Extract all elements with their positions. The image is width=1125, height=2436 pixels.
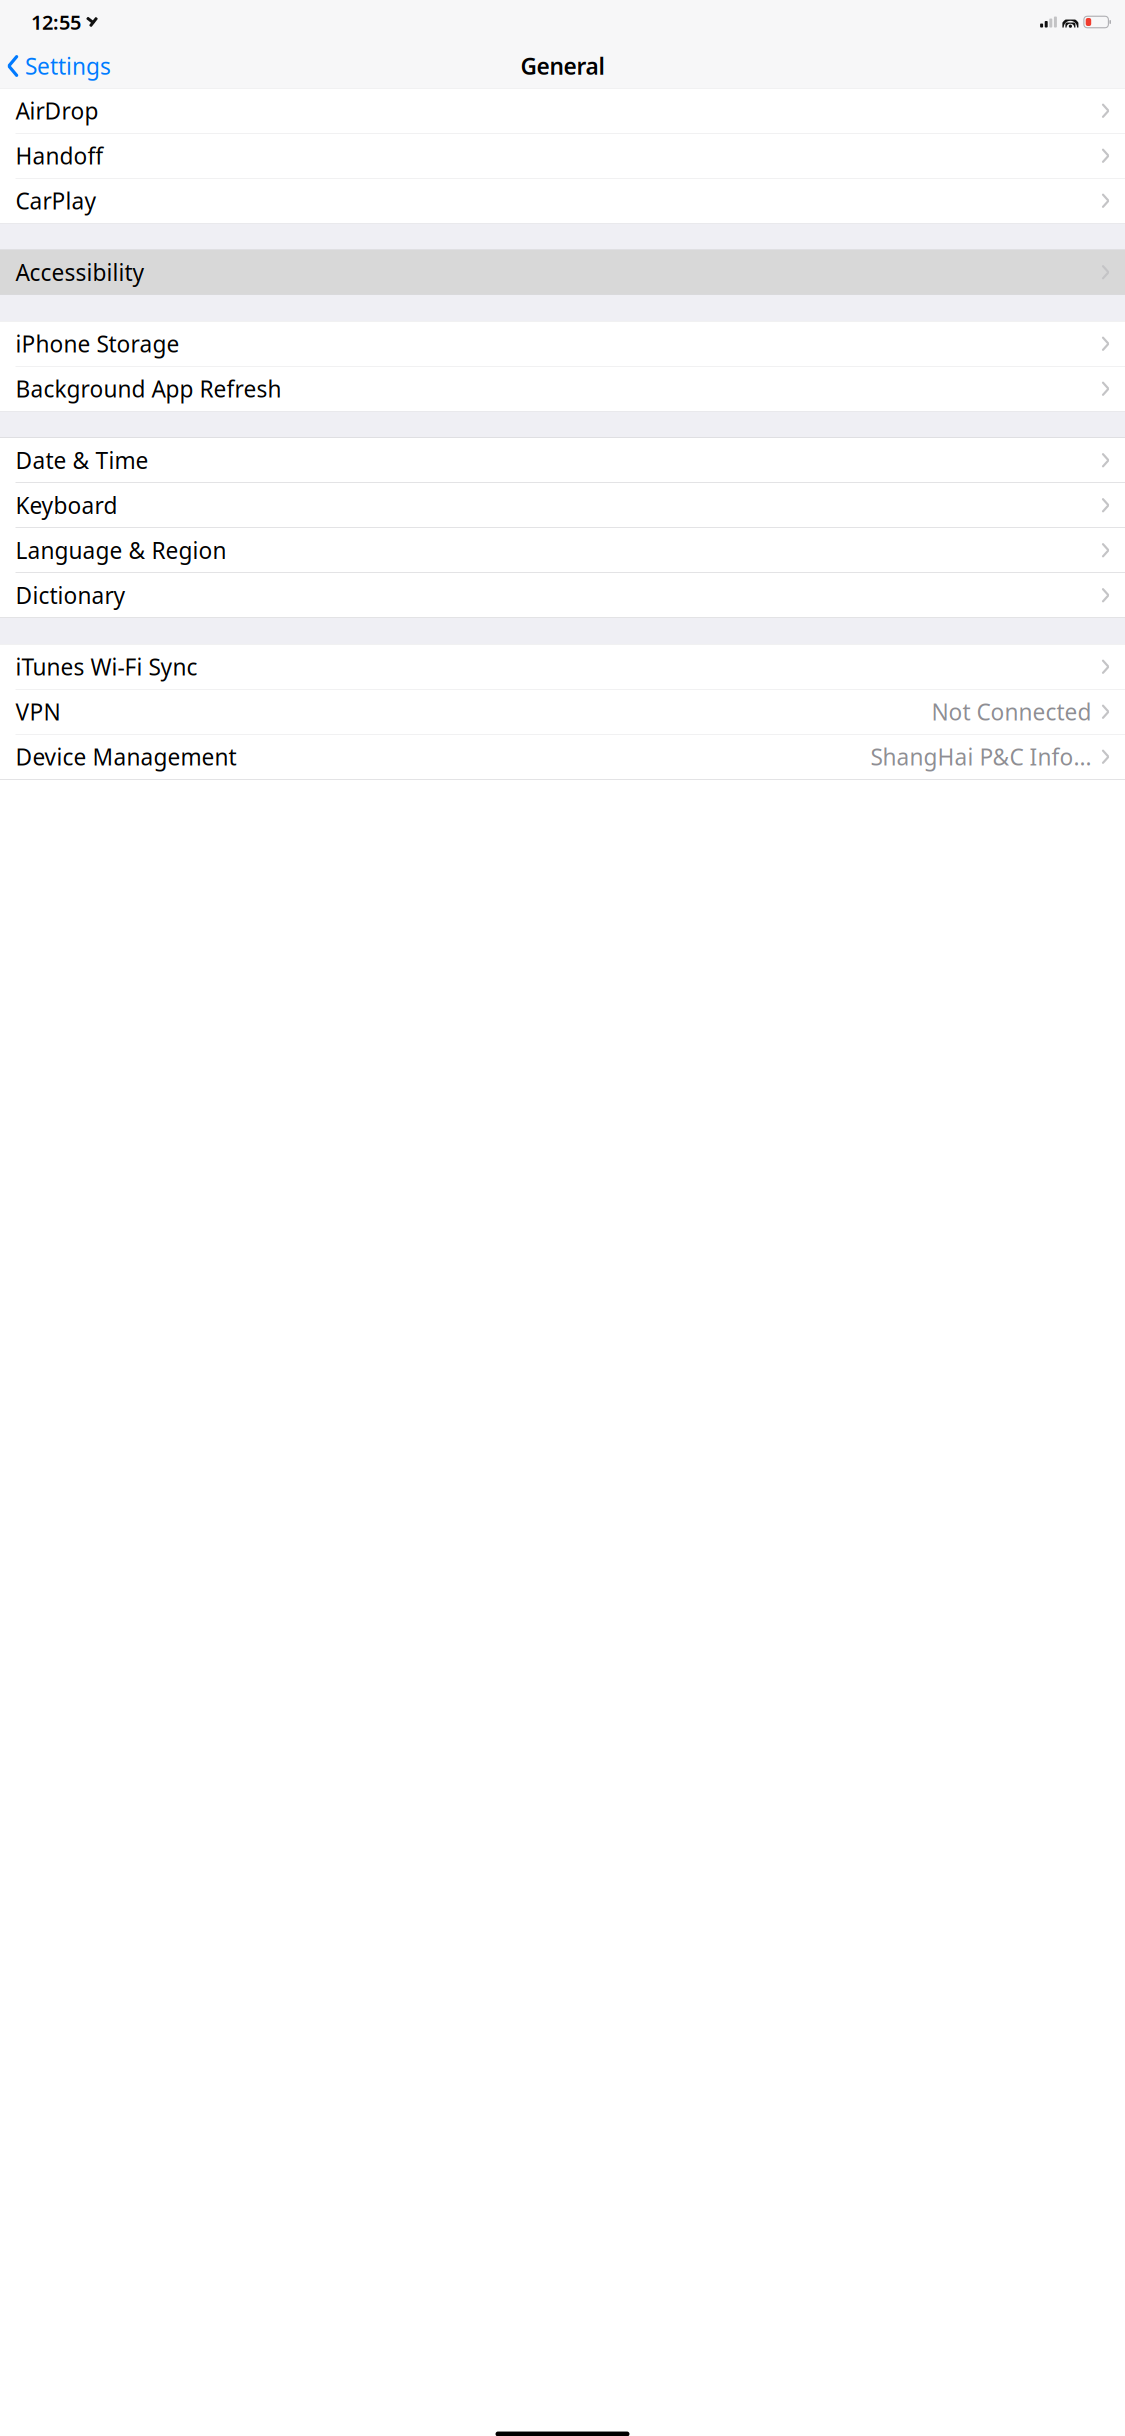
button[interactable]: Date & Time bbox=[0, 438, 1125, 482]
staticText: VPN bbox=[15, 697, 60, 727]
staticText: Language & Region bbox=[15, 535, 226, 565]
staticText: Keyboard bbox=[15, 490, 117, 520]
staticText: 12:55 bbox=[31, 9, 81, 35]
staticText: iPhone Storage bbox=[15, 329, 179, 359]
button[interactable]: Settings bbox=[0, 44, 121, 88]
staticText: Not Connected bbox=[931, 697, 1091, 727]
button[interactable]: Language & Region bbox=[0, 528, 1125, 572]
staticText: Date & Time bbox=[15, 445, 148, 475]
staticText: Dictionary bbox=[15, 580, 125, 610]
button[interactable]: Device Management bbox=[0, 734, 1125, 779]
button[interactable]: iPhone Storage bbox=[0, 321, 1125, 366]
staticText: Handoff bbox=[15, 141, 103, 171]
staticText: ShangHai P&C Info... bbox=[870, 742, 1091, 772]
staticText: CarPlay bbox=[15, 186, 96, 216]
button[interactable]: Background App Refresh bbox=[0, 366, 1125, 411]
button[interactable]: Handoff bbox=[0, 133, 1125, 178]
staticText: iTunes Wi-Fi Sync bbox=[15, 652, 197, 682]
button[interactable]: Keyboard bbox=[0, 483, 1125, 527]
button[interactable]: CarPlay bbox=[0, 178, 1125, 223]
button[interactable]: AirDrop bbox=[0, 88, 1125, 133]
staticText: Background App Refresh bbox=[15, 374, 281, 404]
staticText: Accessibility bbox=[15, 257, 144, 287]
button[interactable]: Dictionary bbox=[0, 573, 1125, 617]
staticText: General bbox=[520, 51, 604, 81]
button[interactable]: iTunes Wi-Fi Sync bbox=[0, 644, 1125, 689]
staticText: AirDrop bbox=[15, 96, 98, 126]
staticText: Device Management bbox=[15, 742, 236, 772]
staticText: Settings bbox=[25, 51, 111, 81]
button[interactable]: Accessibility bbox=[0, 250, 1125, 294]
button[interactable]: VPN bbox=[0, 689, 1125, 734]
